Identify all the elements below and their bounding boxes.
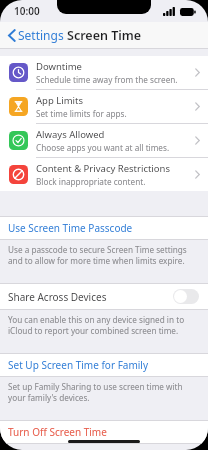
button[interactable]: App Limits: [0, 90, 208, 123]
staticText: You can enable this on any device signed…: [8, 314, 196, 336]
staticText: Always Allowed: [36, 128, 105, 141]
staticText: Use a passcode to secure Screen Time set…: [8, 244, 196, 266]
button[interactable]: Always Allowed: [0, 124, 208, 157]
button[interactable]: Content & Privacy Restrictions: [0, 158, 208, 191]
staticText: Turn Off Screen Time: [8, 425, 107, 439]
button[interactable]: Settings: [6, 24, 66, 46]
staticText: Share Across Devices: [8, 290, 173, 304]
staticText: Block inappropriate content.: [36, 176, 146, 187]
button[interactable]: Turn Off Screen Time: [0, 421, 208, 443]
button[interactable]: Share Across Devices: [0, 284, 208, 309]
staticText: Content & Privacy Restrictions: [36, 162, 170, 175]
staticText: Choose apps you want at all times.: [36, 142, 170, 153]
staticText: Set up Family Sharing to use screen time…: [8, 381, 196, 403]
staticText: Downtime: [36, 60, 82, 73]
staticText: Schedule time away from the screen.: [36, 74, 178, 85]
staticText: Screen Time: [67, 27, 142, 44]
button[interactable]: Downtime: [0, 56, 208, 89]
button[interactable]: Use Screen Time Passcode: [0, 217, 208, 239]
staticText: Set time limits for apps.: [36, 108, 127, 119]
staticText: Set Up Screen Time for Family: [8, 358, 149, 372]
staticText: 10:00: [14, 4, 40, 18]
staticText: Use Screen Time Passcode: [8, 221, 133, 235]
staticText: App Limits: [36, 94, 83, 107]
button[interactable]: Share Across Devices toggle: [173, 289, 199, 304]
button[interactable]: Set Up Screen Time for Family: [0, 354, 208, 376]
staticText: Settings: [18, 27, 64, 43]
